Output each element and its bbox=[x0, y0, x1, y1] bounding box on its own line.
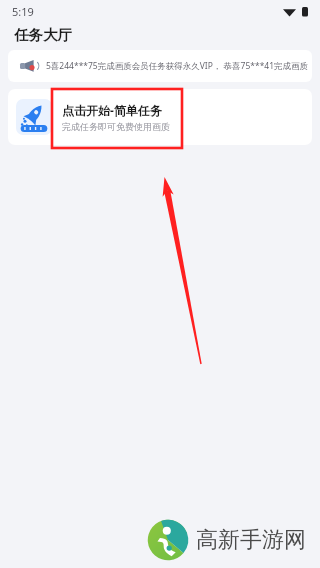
other: 公告 bbox=[18, 58, 38, 74]
staticText: 完成任务即可免费使用画质 bbox=[62, 121, 170, 132]
staticText: 5喜244***75完成画质会员任务获得永久VIP， 恭喜75***41完成画质… bbox=[46, 60, 312, 72]
button[interactable]: 公告 bbox=[8, 50, 312, 82]
staticText: 5:19 bbox=[12, 4, 34, 19]
staticText: 任务大厅 bbox=[14, 26, 72, 44]
staticText: 高新手游网 bbox=[196, 526, 306, 554]
staticText: 点击开始-简单任务 bbox=[62, 102, 162, 118]
button[interactable]: 点击开始-简单任务 bbox=[8, 89, 312, 145]
